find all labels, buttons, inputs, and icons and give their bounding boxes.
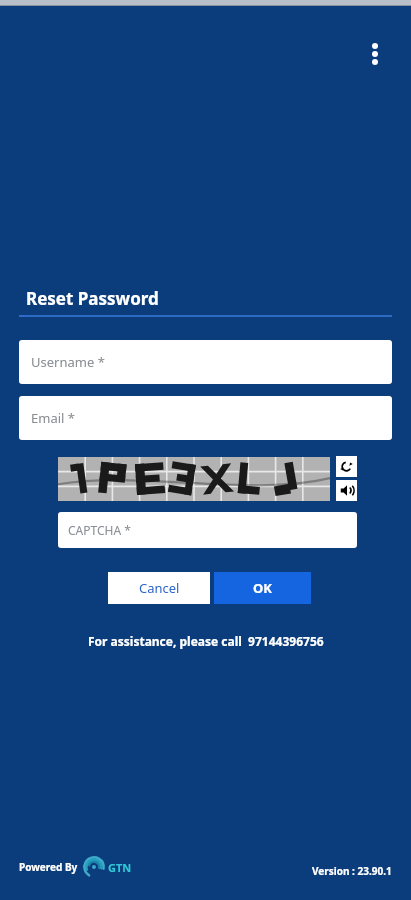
staticText: Cancel	[139, 579, 180, 597]
button[interactable]: Play captcha audio	[336, 480, 357, 501]
staticText: Powered By	[19, 860, 78, 874]
staticText: Username *	[31, 353, 105, 371]
button[interactable]: Username *	[19, 340, 392, 384]
staticText: Email *	[31, 409, 75, 427]
button[interactable]: CAPTCHA *	[58, 512, 357, 548]
button[interactable]: More options	[360, 30, 390, 78]
button[interactable]: Email *	[19, 396, 392, 440]
staticText: Version : 23.90.1	[312, 864, 392, 878]
staticText: GTN	[108, 860, 132, 875]
staticText: OK	[253, 579, 272, 597]
staticText: For assistance, please call 97144396756	[88, 633, 324, 649]
staticText: Reset Password	[26, 287, 159, 310]
button[interactable]: Refresh captcha	[336, 456, 357, 477]
staticText: CAPTCHA *	[68, 522, 131, 538]
button[interactable]: OK	[214, 572, 311, 604]
button[interactable]: Cancel	[108, 572, 210, 604]
